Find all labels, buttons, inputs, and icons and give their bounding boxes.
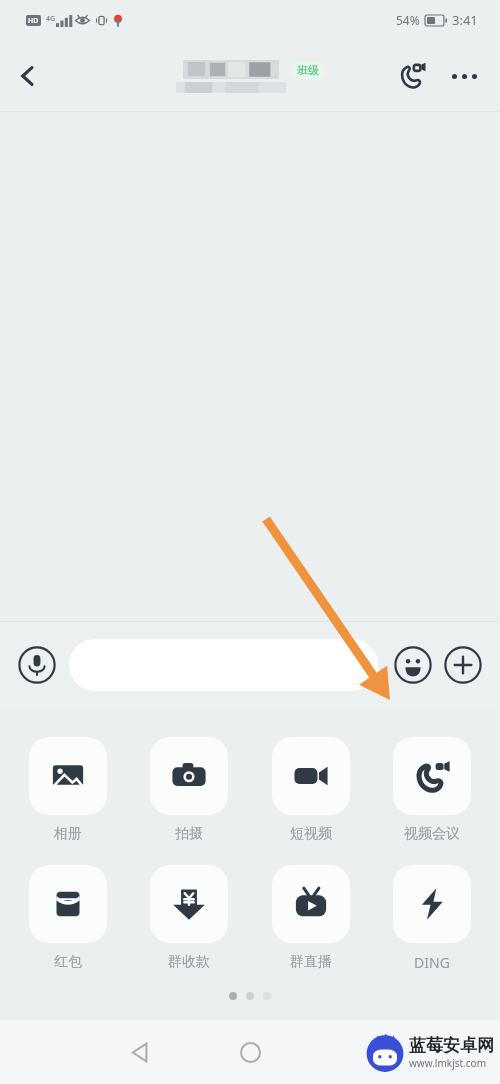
button[interactable]: DING <box>384 865 480 972</box>
staticText: 群收款 <box>168 953 210 971</box>
staticText: 班级 <box>297 63 319 77</box>
button[interactable]: Voice message <box>14 642 60 688</box>
staticText: 相册 <box>54 825 82 843</box>
staticText: 视频会议 <box>404 825 460 843</box>
staticText: DING <box>414 953 450 972</box>
button[interactable]: 短视频 <box>263 737 359 843</box>
staticText: 4G <box>46 14 56 24</box>
staticText: 蓝莓安卓网 <box>409 1035 494 1056</box>
button[interactable]: Message input <box>69 639 378 691</box>
button[interactable]: 群收款 <box>141 865 237 971</box>
button[interactable]: 红包 <box>20 865 116 971</box>
staticText: 短视频 <box>290 825 332 843</box>
staticText: 3:41 <box>452 11 478 29</box>
button[interactable]: Emoji <box>390 642 436 688</box>
staticText: 红包 <box>54 953 82 971</box>
button[interactable]: Home <box>228 1030 272 1074</box>
button[interactable]: 拍摄 <box>141 737 237 843</box>
button[interactable]: Back <box>118 1030 162 1074</box>
staticText: HD <box>28 16 39 26</box>
staticText: 群直播 <box>290 953 332 971</box>
button[interactable]: More options <box>438 50 490 102</box>
button[interactable]: 相册 <box>20 737 116 843</box>
button[interactable]: More <box>440 642 486 688</box>
staticText: www.lmkjst.com <box>409 1056 486 1070</box>
button[interactable]: 群直播 <box>263 865 359 971</box>
staticText: 54% <box>396 12 420 28</box>
button[interactable]: Video call <box>386 50 438 102</box>
button[interactable]: 视频会议 <box>384 737 480 843</box>
button[interactable]: Back <box>0 48 56 104</box>
staticText: 拍摄 <box>175 825 203 843</box>
